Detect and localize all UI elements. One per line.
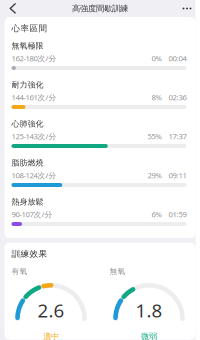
staticText: 90-107次/分 [11,209,52,219]
staticText: 6% [151,209,161,219]
staticText: 55% [147,131,161,141]
staticText: 00:04 [168,53,186,63]
staticText: 無氧極限 [11,41,43,51]
staticText: 心肺強化 [11,119,43,129]
staticText: 1.8 [135,298,162,323]
staticText: 108-124次/分 [11,170,56,180]
staticText: 0% [151,53,161,63]
button[interactable]: 返回 [3,0,23,17]
staticText: 微弱 [141,331,157,340]
staticText: 高強度間歇訓練 [72,3,128,14]
staticText: 耐力強化 [11,80,43,90]
staticText: 144-161次/分 [11,92,56,102]
staticText: 2.6 [37,298,64,323]
staticText: 適中 [43,331,59,340]
staticText: 有氧 [11,266,27,276]
staticText: 訓練效果 [11,248,47,259]
staticText: 無氧 [109,266,125,276]
button[interactable]: 更多選項 [177,0,197,17]
staticText: 熱身放鬆 [11,197,43,207]
staticText: 02:36 [168,92,186,102]
staticText: 09:11 [168,170,186,180]
staticText: 125-143次/分 [11,131,56,141]
staticText: 8% [151,92,161,102]
staticText: 01:59 [168,209,186,219]
staticText: 17:37 [168,131,186,141]
staticText: 脂肪燃燒 [11,158,43,168]
staticText: 29% [147,170,161,180]
staticText: 心率區間 [11,23,47,34]
staticText: 162-180次/分 [11,53,56,63]
